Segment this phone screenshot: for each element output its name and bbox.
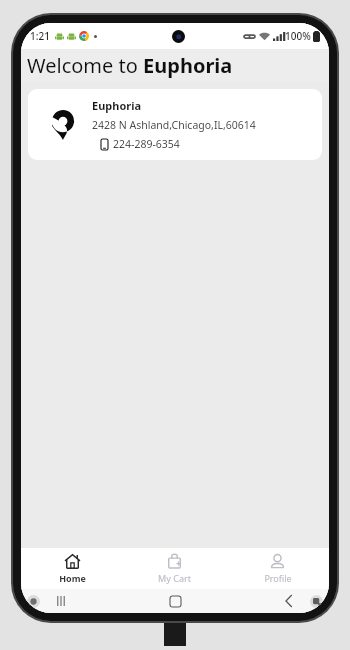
button[interactable]: Home xyxy=(21,549,123,588)
staticText: Welcome to Euphoria xyxy=(27,52,233,79)
button[interactable]: My Cart xyxy=(123,549,226,588)
staticText: 1:21 xyxy=(30,29,50,43)
button[interactable]: Euphoria xyxy=(28,89,322,160)
button[interactable]: Recent apps xyxy=(51,591,71,611)
button[interactable]: Home xyxy=(165,591,185,611)
button[interactable]: Accessibility xyxy=(27,595,40,608)
button[interactable]: Screenshot xyxy=(310,595,323,608)
staticText: 224-289-6354 xyxy=(113,137,180,151)
button[interactable]: Profile xyxy=(226,549,329,588)
staticText: Euphoria xyxy=(92,98,142,113)
staticText: Profile xyxy=(264,572,292,584)
staticText: Home xyxy=(59,572,86,584)
staticText: My Cart xyxy=(158,572,191,584)
staticText: 2428 N Ashland,Chicago,IL,60614 xyxy=(92,118,256,132)
staticText: 100% xyxy=(285,29,311,43)
button[interactable]: Back xyxy=(279,591,299,611)
